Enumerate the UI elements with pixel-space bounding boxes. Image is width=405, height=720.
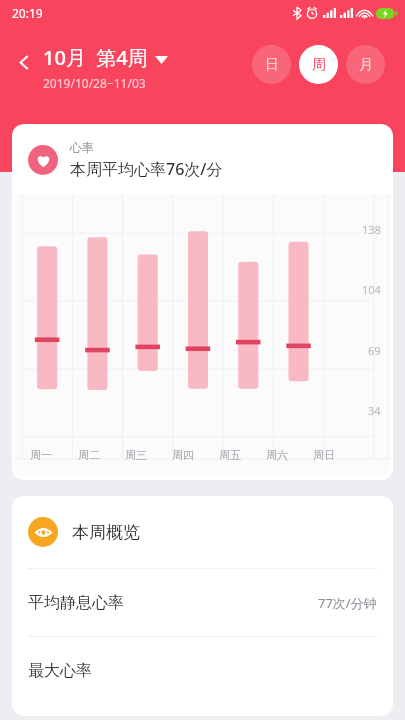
button[interactable]: 本周概览 [12,496,393,568]
staticText: 周一 [30,448,52,462]
staticText: 104 [362,282,381,297]
staticText: 20:19 [12,5,43,21]
button[interactable]: 周 [299,45,338,84]
staticText: 10月 第4周 [43,44,148,71]
staticText: 周五 [219,448,241,462]
staticText: 周六 [266,448,288,462]
staticText: 69 [368,343,381,358]
button[interactable]: 最大心率 [12,637,393,704]
staticText: 2019/10/28−11/03 [43,75,146,91]
staticText: 周四 [172,448,194,462]
button[interactable]: 平均静息心率 [12,569,393,636]
staticText: 138 [362,222,381,237]
staticText: 本周概览 [72,522,140,543]
staticText: 最大心率 [28,661,92,681]
staticText: 77次/分钟 [318,594,377,612]
button[interactable]: 心率 [12,124,393,180]
staticText: 34 [368,403,381,418]
staticText: 周二 [78,448,100,462]
button[interactable]: 月 [346,45,385,84]
staticText: 月 [359,56,373,74]
button[interactable]: Back [8,46,40,78]
staticText: 日 [265,56,279,74]
staticText: 周三 [125,448,147,462]
staticText: 周日 [313,448,335,462]
staticText: 心率 [70,140,94,155]
staticText: 周 [312,56,326,74]
button[interactable]: 10月 第4周 [43,44,168,71]
staticText: 平均静息心率 [28,593,124,613]
button[interactable]: 日 [252,45,291,84]
staticText: 本周平均心率76次/分 [70,158,223,180]
